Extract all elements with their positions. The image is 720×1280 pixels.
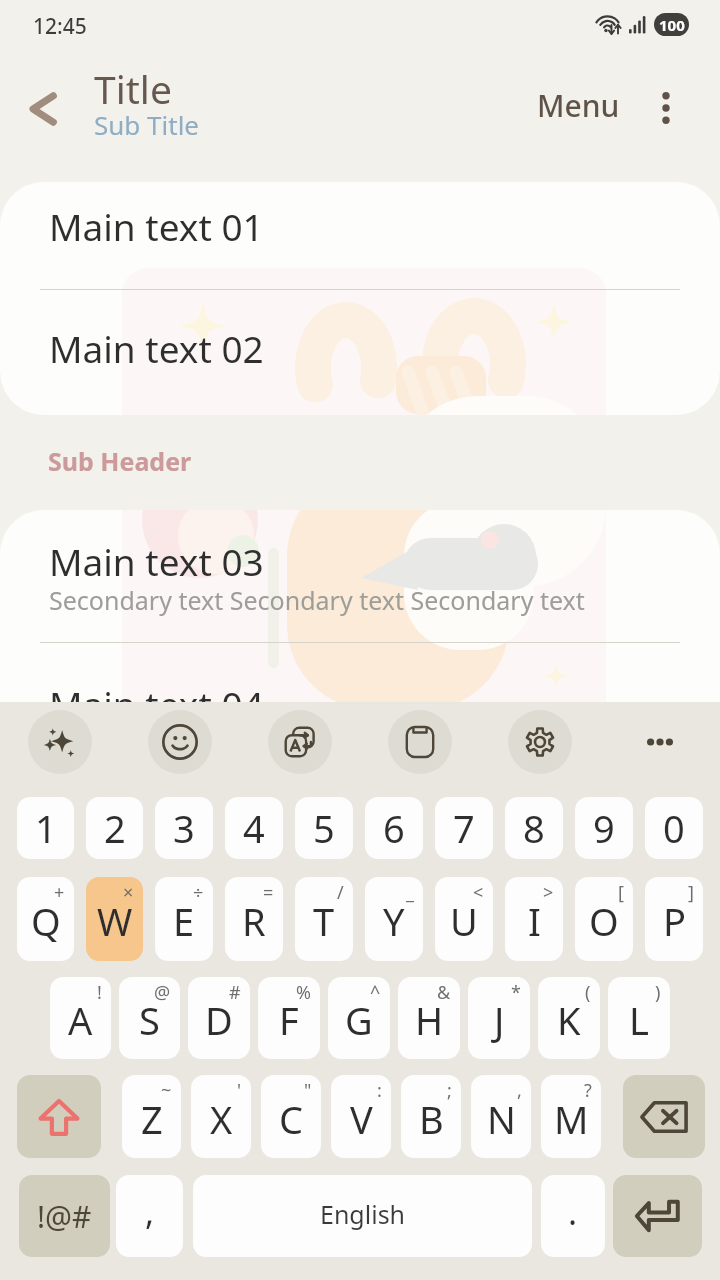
button[interactable]: * — [468, 977, 530, 1059]
button[interactable]: 8 — [505, 797, 563, 859]
staticText: ' — [237, 1078, 242, 1103]
staticText: F — [279, 994, 299, 1046]
button[interactable]: More — [628, 710, 692, 774]
button[interactable]: 5 — [295, 797, 353, 859]
staticText: 3 — [173, 802, 195, 854]
button[interactable]: × — [86, 877, 143, 961]
button[interactable]: > — [505, 877, 563, 961]
staticText: 6 — [383, 802, 405, 854]
button[interactable]: ; — [401, 1075, 461, 1158]
staticText: Main text 04 — [49, 679, 264, 729]
staticText: O — [589, 895, 619, 947]
staticText: 5 — [313, 802, 335, 854]
staticText: L — [629, 994, 649, 1046]
button[interactable]: 0 — [645, 797, 703, 859]
button[interactable]: 9 — [575, 797, 633, 859]
button[interactable]: , — [116, 1175, 183, 1257]
button[interactable]: English — [193, 1175, 532, 1257]
staticText: Y — [383, 895, 405, 947]
button[interactable]: # — [188, 977, 250, 1059]
staticText: 4 — [243, 802, 265, 854]
button[interactable]: ) — [608, 977, 670, 1059]
button[interactable]: 7 — [435, 797, 493, 859]
button[interactable]: Enter — [613, 1175, 702, 1257]
staticText: 2 — [104, 802, 126, 854]
button[interactable]: Shift — [17, 1075, 101, 1158]
button[interactable]: ( — [538, 977, 600, 1059]
staticText: Main text 03 — [49, 536, 264, 586]
staticText: X — [210, 1093, 233, 1145]
button[interactable]: , — [471, 1075, 531, 1158]
button[interactable]: ? — [541, 1075, 601, 1158]
button[interactable]: & — [398, 977, 460, 1059]
button[interactable]: + — [17, 877, 74, 961]
staticText: = — [263, 880, 274, 905]
staticText: ( — [585, 980, 591, 1005]
staticText: Q — [31, 895, 61, 947]
staticText: Secondary text — [49, 726, 224, 760]
staticText: ^ — [370, 980, 381, 1005]
button[interactable]: 2 — [86, 797, 143, 859]
staticText: U — [450, 895, 478, 947]
button[interactable]: @ — [119, 977, 180, 1059]
button[interactable]: Translate — [268, 710, 332, 774]
staticText: P — [663, 895, 686, 947]
button[interactable]: 4 — [225, 797, 283, 859]
button[interactable]: ' — [191, 1075, 251, 1158]
button[interactable]: 3 — [155, 797, 213, 859]
button[interactable]: _ — [365, 877, 423, 961]
button[interactable]: ÷ — [155, 877, 213, 961]
button[interactable]: 1 — [17, 797, 74, 859]
staticText: M — [554, 1093, 589, 1145]
staticText: # — [229, 980, 241, 1005]
button[interactable]: % — [258, 977, 320, 1059]
staticText: _ — [406, 880, 414, 905]
staticText: Menu — [537, 85, 620, 126]
staticText: W — [97, 895, 133, 947]
staticText: > — [543, 880, 554, 905]
button[interactable]: Back — [12, 78, 74, 140]
staticText: 7 — [453, 802, 475, 854]
staticText: , — [145, 1189, 155, 1235]
staticText: " — [304, 1078, 312, 1103]
staticText: K — [557, 994, 581, 1046]
button[interactable]: = — [225, 877, 283, 961]
button[interactable]: Backspace — [623, 1075, 705, 1158]
staticText: ; — [447, 1078, 452, 1103]
staticText: 9 — [593, 802, 615, 854]
staticText: [ — [618, 880, 624, 905]
button[interactable]: ^ — [328, 977, 390, 1059]
button[interactable]: ] — [645, 877, 703, 961]
button[interactable]: . — [541, 1175, 605, 1257]
button[interactable]: ! — [50, 977, 111, 1059]
button[interactable]: [ — [575, 877, 633, 961]
button[interactable]: : — [331, 1075, 391, 1158]
staticText: J — [494, 994, 505, 1046]
button[interactable]: < — [435, 877, 493, 961]
button[interactable]: Main text 03 — [0, 510, 720, 642]
staticText: Main text 02 — [49, 323, 264, 373]
staticText: Main text 01 — [49, 201, 264, 251]
button[interactable]: Menu — [523, 77, 634, 134]
button[interactable]: 6 — [365, 797, 423, 859]
staticText: G — [345, 994, 373, 1046]
button[interactable]: Emoji — [148, 710, 212, 774]
button[interactable]: Settings — [508, 710, 572, 774]
staticText: Secondary text Secondary text Secondary … — [49, 583, 585, 617]
button[interactable]: " — [261, 1075, 321, 1158]
button[interactable]: / — [295, 877, 353, 961]
button[interactable]: Clipboard — [388, 710, 452, 774]
staticText: A — [68, 994, 93, 1046]
button[interactable]: Main text 01 — [0, 182, 720, 289]
button[interactable]: ~ — [122, 1075, 181, 1158]
button[interactable]: More options — [636, 78, 696, 138]
staticText: !@# — [37, 1196, 92, 1237]
staticText: English — [320, 1197, 406, 1231]
button[interactable]: Main text 04 — [0, 643, 720, 775]
staticText: S — [139, 994, 160, 1046]
button[interactable]: Main text 02 — [0, 285, 720, 411]
button[interactable]: !@# — [19, 1175, 110, 1257]
staticText: @ — [154, 980, 171, 1005]
staticText: + — [54, 880, 65, 905]
button[interactable]: Writing assist — [28, 710, 92, 774]
